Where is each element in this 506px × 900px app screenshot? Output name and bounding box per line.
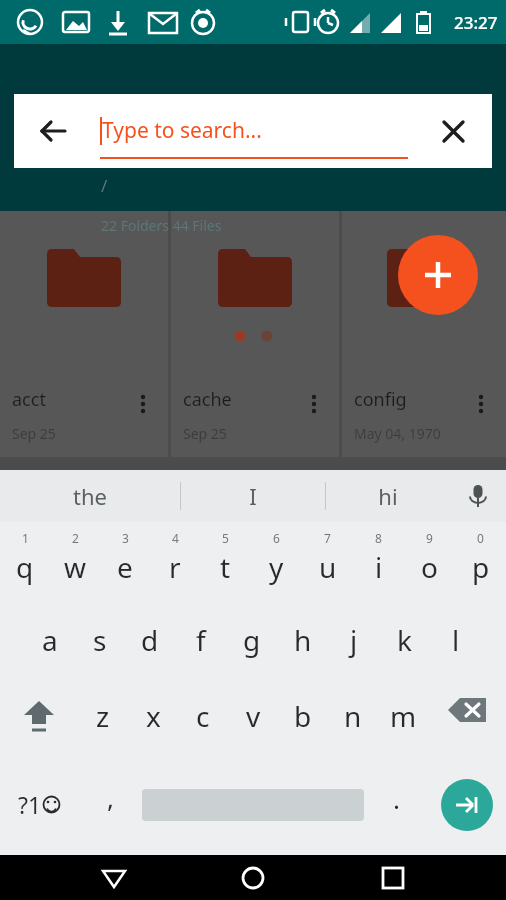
button[interactable]: z: [78, 678, 128, 754]
button[interactable]: c: [178, 678, 228, 754]
staticText: d: [141, 621, 159, 659]
button[interactable]: acct: [0, 211, 168, 457]
staticText: hi: [378, 481, 398, 511]
button[interactable]: hi: [326, 470, 450, 522]
button[interactable]: k: [379, 602, 430, 678]
staticText: config: [354, 387, 407, 412]
staticText: the: [73, 481, 107, 511]
staticText: 8: [375, 530, 382, 546]
button[interactable]: 1: [0, 528, 50, 602]
staticText: z: [96, 697, 110, 735]
button[interactable]: ?1: [0, 754, 78, 855]
button[interactable]: More options: [299, 389, 329, 419]
button[interactable]: s: [75, 602, 125, 678]
button[interactable]: a: [25, 602, 75, 678]
button[interactable]: 4: [150, 528, 200, 602]
staticText: l: [452, 621, 460, 659]
button[interactable]: More options: [466, 389, 496, 419]
staticText: 1: [22, 530, 29, 546]
staticText: 9: [426, 530, 433, 546]
button[interactable]: v: [228, 678, 278, 754]
staticText: 7: [324, 530, 331, 546]
button[interactable]: More options: [128, 389, 158, 419]
button[interactable]: 2: [50, 528, 100, 602]
staticText: cache: [183, 387, 232, 412]
staticText: s: [93, 621, 107, 659]
staticText: f: [196, 621, 206, 659]
button[interactable]: ,: [78, 754, 142, 855]
staticText: b: [294, 697, 312, 735]
staticText: 6: [273, 530, 280, 546]
staticText: Sep 25: [183, 424, 227, 443]
staticText: 4: [172, 530, 179, 546]
staticText: j: [350, 621, 358, 659]
button[interactable]: 6: [251, 528, 302, 602]
button[interactable]: Back: [88, 855, 140, 900]
staticText: 22 Folders 44 Files: [101, 216, 222, 235]
staticText: w: [64, 548, 87, 586]
staticText: /: [101, 174, 108, 197]
staticText: x: [146, 697, 161, 735]
button[interactable]: d: [125, 602, 175, 678]
staticText: q: [16, 548, 34, 586]
staticText: g: [243, 621, 261, 659]
button[interactable]: 8: [353, 528, 404, 602]
staticText: 23:27: [454, 11, 498, 34]
staticText: t: [220, 548, 231, 586]
button[interactable]: .: [364, 754, 428, 855]
button[interactable]: b: [278, 678, 328, 754]
button[interactable]: Shift: [0, 678, 78, 754]
staticText: 0: [477, 530, 484, 546]
button[interactable]: Voice input: [450, 470, 506, 522]
button[interactable]: g: [226, 602, 277, 678]
staticText: r: [169, 548, 181, 586]
button[interactable]: h: [277, 602, 328, 678]
button[interactable]: Clear search: [430, 108, 476, 154]
staticText: o: [421, 548, 438, 586]
staticText: u: [319, 548, 337, 586]
staticText: acct: [12, 387, 46, 412]
staticText: k: [397, 621, 412, 659]
button[interactable]: 0: [455, 528, 506, 602]
button[interactable]: Home: [227, 855, 279, 900]
staticText: n: [344, 697, 362, 735]
staticText: ?1: [18, 789, 42, 820]
staticText: .: [393, 781, 400, 816]
staticText: 2: [72, 530, 79, 546]
staticText: Type to search...: [102, 116, 262, 145]
staticText: v: [246, 697, 261, 735]
staticText: i: [375, 548, 383, 586]
staticText: May 04, 1970: [354, 424, 441, 443]
staticText: c: [196, 697, 210, 735]
staticText: h: [294, 621, 312, 659]
button[interactable]: 9: [404, 528, 455, 602]
button[interactable]: m: [378, 678, 428, 754]
button[interactable]: l: [430, 602, 481, 678]
button[interactable]: Add new: [398, 235, 478, 315]
button[interactable]: x: [128, 678, 178, 754]
button[interactable]: Back: [28, 106, 78, 156]
button[interactable]: 3: [100, 528, 150, 602]
button[interactable]: j: [328, 602, 379, 678]
button[interactable]: 7: [302, 528, 353, 602]
button[interactable]: config: [342, 211, 506, 457]
button[interactable]: the: [0, 470, 180, 522]
staticText: p: [472, 548, 490, 586]
button[interactable]: Recent apps: [367, 855, 419, 900]
button[interactable]: Enter: [441, 779, 493, 831]
staticText: ,: [107, 780, 114, 815]
staticText: Sep 25: [12, 424, 56, 443]
staticText: y: [269, 548, 284, 586]
button[interactable]: 5: [200, 528, 251, 602]
button[interactable]: f: [175, 602, 226, 678]
staticText: m: [390, 697, 417, 735]
button[interactable]: I: [181, 470, 325, 522]
button[interactable]: Backspace: [428, 678, 506, 754]
button[interactable]: n: [328, 678, 378, 754]
staticText: I: [249, 481, 257, 511]
staticText: 5: [222, 530, 229, 546]
button[interactable]: cache: [171, 211, 339, 457]
staticText: a: [42, 621, 58, 659]
staticText: e: [117, 548, 133, 586]
